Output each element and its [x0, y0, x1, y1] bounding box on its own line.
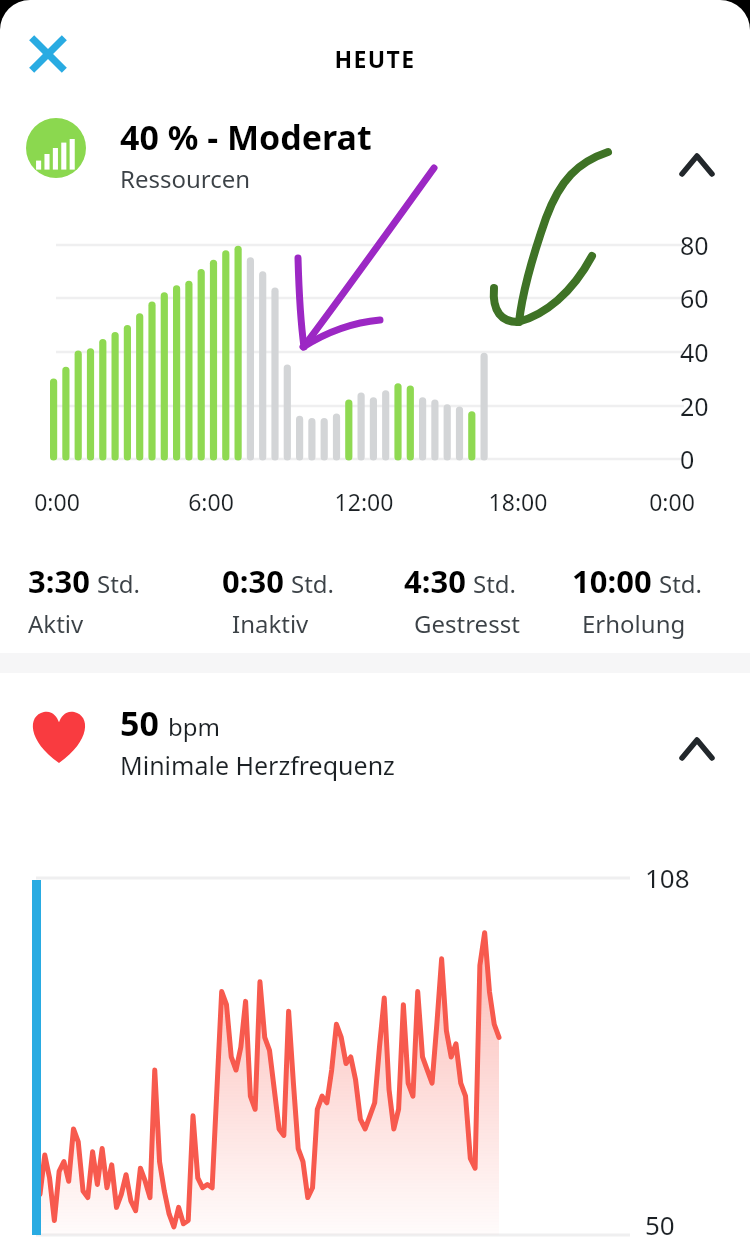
- staticText: 0: [680, 442, 695, 476]
- button[interactable]: Einklappen: [666, 718, 728, 780]
- staticText: 12:00: [294, 486, 434, 517]
- button[interactable]: Schließen: [14, 20, 82, 88]
- staticText: Std.: [473, 567, 517, 600]
- staticText: Ressourcen: [120, 162, 251, 195]
- staticText: 108: [645, 860, 690, 895]
- staticText: 60: [680, 281, 709, 315]
- staticText: Std.: [97, 567, 141, 600]
- staticText: Std.: [659, 567, 703, 600]
- button[interactable]: Einklappen: [666, 134, 728, 196]
- staticText: bpm: [168, 710, 220, 743]
- staticText: 3:30: [28, 560, 90, 602]
- button[interactable]: 40 % - Moderat: [26, 114, 666, 195]
- button[interactable]: 3:30: [28, 560, 141, 640]
- button[interactable]: 0:30: [222, 560, 335, 640]
- staticText: Erholung: [582, 607, 686, 640]
- staticText: 40 % - Moderat: [120, 114, 372, 160]
- staticText: 0:00: [0, 486, 127, 517]
- button[interactable]: 10:00: [572, 560, 703, 640]
- staticText: 0:00: [602, 486, 742, 517]
- staticText: 20: [680, 389, 709, 423]
- staticText: Gestresst: [414, 607, 520, 640]
- staticText: 0:30: [222, 560, 284, 602]
- staticText: Minimale Herzfrequenz: [120, 748, 395, 782]
- button[interactable]: 4:30: [404, 560, 517, 640]
- staticText: Aktiv: [28, 607, 84, 640]
- staticText: HEUTE: [0, 43, 750, 74]
- staticText: 10:00: [572, 560, 652, 602]
- staticText: 50: [645, 1207, 675, 1242]
- staticText: 4:30: [404, 560, 466, 602]
- staticText: Std.: [291, 567, 335, 600]
- staticText: 6:00: [141, 486, 281, 517]
- staticText: 18:00: [448, 486, 588, 517]
- staticText: 40: [680, 335, 709, 369]
- staticText: 80: [680, 228, 709, 262]
- staticText: Inaktiv: [232, 607, 309, 640]
- button[interactable]: 50: [26, 700, 666, 782]
- staticText: 50: [120, 700, 159, 746]
